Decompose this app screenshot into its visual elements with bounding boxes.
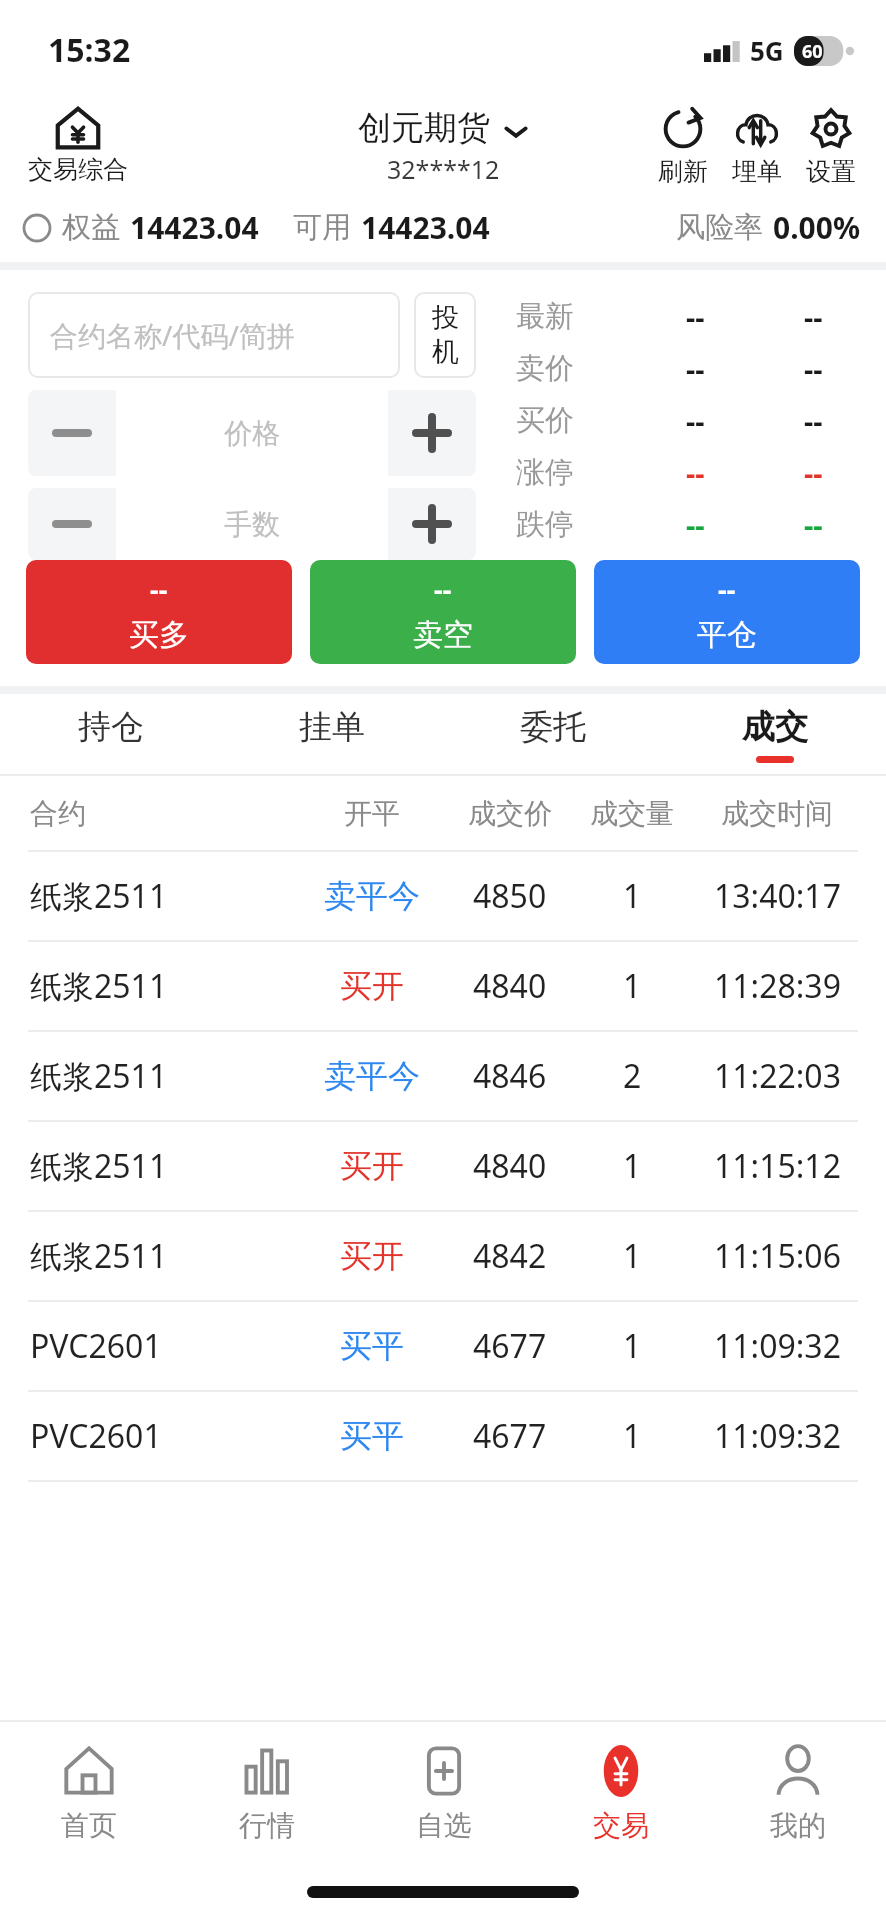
staticText: 14423.04 — [361, 207, 490, 248]
staticText: 11:15:06 — [714, 1234, 841, 1278]
staticText: 11:09:32 — [714, 1324, 841, 1368]
staticText: -- — [686, 349, 705, 388]
staticText: 纸浆2511 — [30, 874, 298, 918]
button[interactable]: 增加手数 — [388, 488, 476, 560]
staticText: 开平 — [344, 796, 400, 831]
staticText: -- — [686, 297, 705, 336]
staticText: 买开 — [340, 1146, 404, 1186]
staticText: -- — [686, 453, 705, 492]
staticText: -- — [804, 349, 823, 388]
staticText: 15:32 — [48, 28, 131, 72]
staticText: 跌停 — [516, 506, 636, 543]
staticText: 价格 — [224, 416, 280, 451]
staticText: 买开 — [340, 966, 404, 1006]
button[interactable]: 自选 — [355, 1722, 532, 1864]
staticText: 2 — [623, 1054, 642, 1098]
button[interactable]: 价格 — [116, 390, 388, 476]
staticText: 成交量 — [590, 796, 674, 831]
button[interactable]: -- — [594, 560, 860, 664]
button[interactable]: -- — [26, 560, 292, 664]
button[interactable]: 减少价格 — [28, 390, 116, 476]
button[interactable]: 合约名称/代码/简拼 — [28, 292, 400, 378]
button[interactable]: 交易综合 — [24, 107, 132, 185]
staticText: 1 — [623, 874, 642, 918]
staticText: 1 — [623, 1234, 642, 1278]
button[interactable]: 我的 — [709, 1722, 886, 1864]
staticText: -- — [434, 571, 452, 608]
button[interactable]: 设置 — [796, 104, 866, 189]
staticText: 买平 — [340, 1416, 404, 1456]
staticText: -- — [150, 571, 168, 608]
staticText: 买开 — [340, 1236, 404, 1276]
staticText: 4850 — [473, 874, 547, 918]
staticText: 成交时间 — [721, 796, 833, 831]
button[interactable]: 增加价格 — [388, 390, 476, 476]
staticText: 交易 — [593, 1808, 649, 1843]
staticText: 合约名称/代码/简拼 — [50, 316, 295, 354]
staticText: 我的 — [770, 1808, 826, 1843]
staticText: -- — [804, 453, 823, 492]
staticText: 14423.04 — [130, 207, 259, 248]
staticText: 纸浆2511 — [30, 1054, 298, 1098]
staticText: 4842 — [473, 1234, 547, 1278]
staticText: 13:40:17 — [714, 874, 841, 918]
button[interactable]: 埋单 — [722, 104, 792, 189]
button[interactable]: 减少手数 — [28, 488, 116, 560]
staticText: 成交价 — [468, 796, 552, 831]
staticText: 买价 — [516, 402, 636, 439]
button[interactable]: 成交 — [664, 694, 886, 774]
button[interactable]: 手数 — [116, 488, 388, 560]
staticText: 交易综合 — [28, 154, 128, 185]
button[interactable]: 创元期货 — [348, 107, 538, 186]
staticText: 机 — [432, 335, 459, 369]
staticText: 4840 — [473, 1144, 547, 1188]
staticText: 刷新 — [658, 156, 708, 187]
staticText: PVC2601 — [30, 1324, 298, 1368]
button[interactable]: 持仓 — [0, 694, 221, 774]
staticText: 11:28:39 — [714, 964, 841, 1008]
staticText: 11:15:12 — [714, 1144, 841, 1188]
staticText: 涨停 — [516, 454, 636, 491]
button[interactable]: 纸浆2511 — [0, 1122, 886, 1210]
staticText: -- — [686, 505, 705, 544]
button[interactable]: 纸浆2511 — [0, 1212, 886, 1300]
staticText: 成交 — [742, 706, 808, 748]
button[interactable]: 行情 — [178, 1722, 355, 1864]
staticText: 挂单 — [299, 706, 365, 748]
staticText: 自选 — [416, 1808, 472, 1843]
staticText: 4840 — [473, 964, 547, 1008]
button[interactable]: 纸浆2511 — [0, 942, 886, 1030]
staticText: -- — [686, 401, 705, 440]
staticText: 卖价 — [516, 350, 636, 387]
staticText: 60 — [802, 39, 823, 64]
staticText: 4846 — [473, 1054, 547, 1098]
staticText: 1 — [623, 964, 642, 1008]
button[interactable]: 纸浆2511 — [0, 1032, 886, 1120]
staticText: 4677 — [473, 1324, 547, 1368]
staticText: 11:09:32 — [714, 1414, 841, 1458]
button[interactable]: 首页 — [0, 1722, 178, 1864]
button[interactable]: 委托 — [442, 694, 664, 774]
staticText: 手数 — [224, 507, 280, 542]
staticText: 买多 — [129, 616, 189, 654]
staticText: 纸浆2511 — [30, 1234, 298, 1278]
button[interactable]: PVC2601 — [0, 1392, 886, 1480]
button[interactable]: 交易 — [532, 1722, 709, 1864]
staticText: PVC2601 — [30, 1414, 298, 1458]
staticText: 最新 — [516, 298, 636, 335]
staticText: -- — [804, 297, 823, 336]
button[interactable]: -- — [310, 560, 576, 664]
staticText: 创元期货 — [358, 107, 490, 149]
button[interactable]: 挂单 — [221, 694, 442, 774]
staticText: 持仓 — [78, 706, 144, 748]
staticText: -- — [804, 505, 823, 544]
button[interactable]: 纸浆2511 — [0, 852, 886, 940]
staticText: 委托 — [520, 706, 586, 748]
staticText: 买平 — [340, 1326, 404, 1366]
staticText: 卖空 — [413, 616, 473, 654]
button[interactable]: PVC2601 — [0, 1302, 886, 1390]
staticText: 1 — [623, 1144, 642, 1188]
staticText: 纸浆2511 — [30, 1144, 298, 1188]
button[interactable]: 刷新 — [648, 104, 718, 189]
button[interactable]: 投 — [414, 292, 476, 378]
